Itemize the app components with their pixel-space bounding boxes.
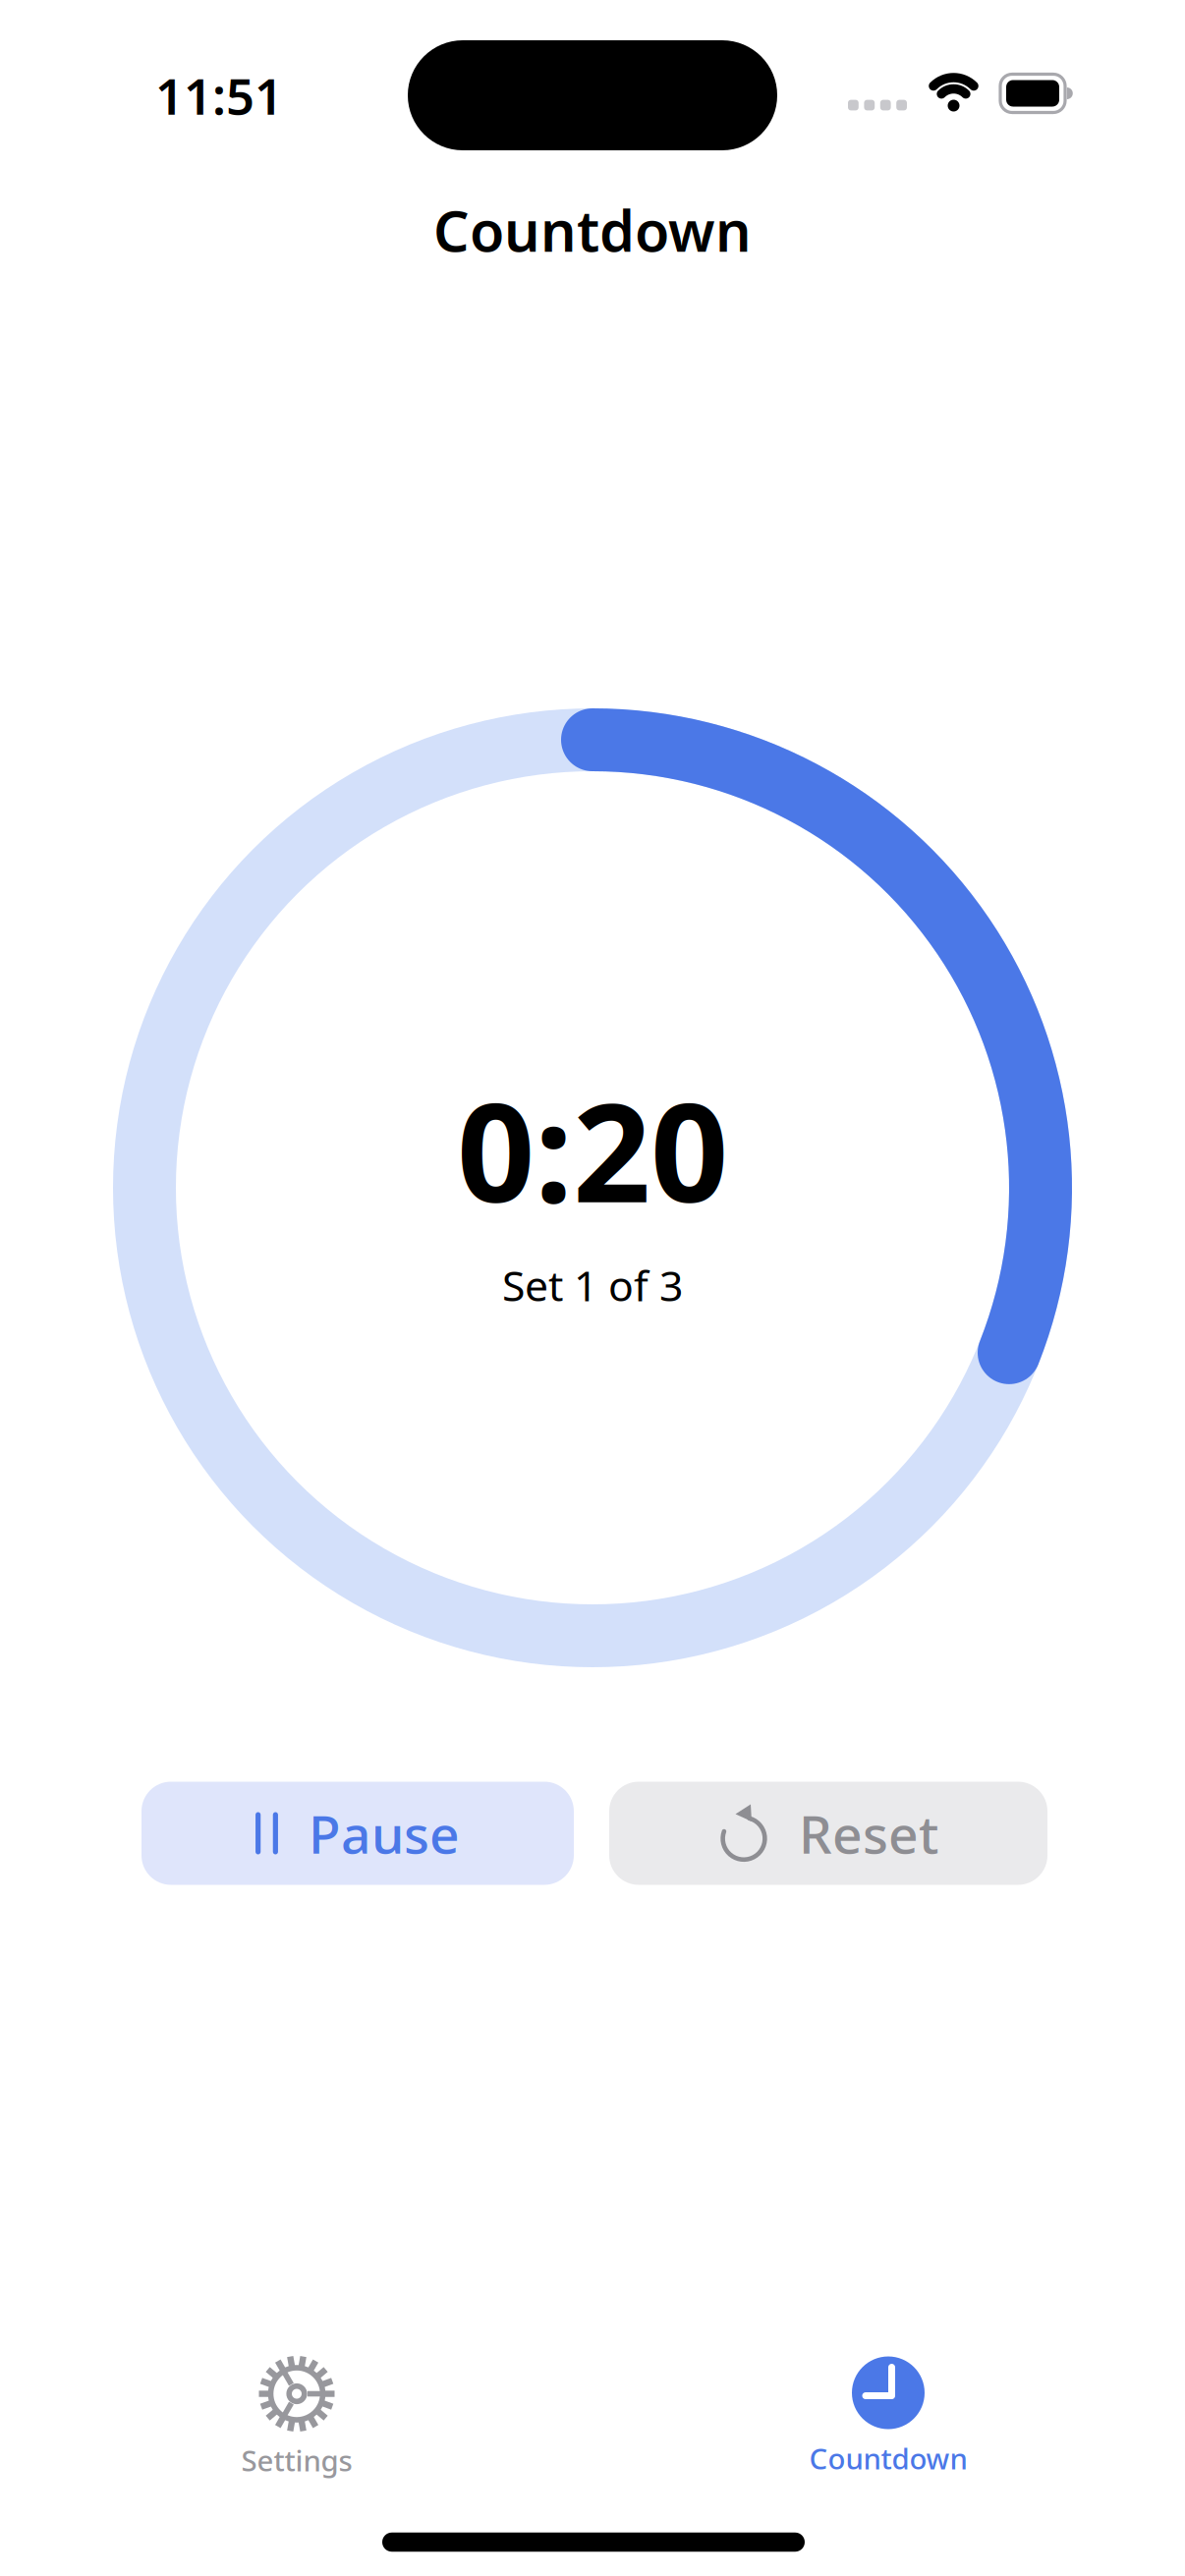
button[interactable]: Countdown xyxy=(809,2356,967,2477)
staticText: Countdown xyxy=(433,192,752,267)
staticText: Set 1 of 3 xyxy=(502,1257,683,1313)
button[interactable]: Reset xyxy=(609,1782,1047,1885)
button[interactable]: Settings xyxy=(241,2354,352,2479)
staticText: Countdown xyxy=(809,2439,967,2477)
staticText: Settings xyxy=(241,2441,352,2479)
staticText: Pause xyxy=(308,1798,460,1868)
staticText: 11:51 xyxy=(155,62,283,128)
button[interactable]: Pause xyxy=(141,1782,574,1885)
staticText: 0:20 xyxy=(457,1059,728,1240)
staticText: Reset xyxy=(799,1798,938,1868)
